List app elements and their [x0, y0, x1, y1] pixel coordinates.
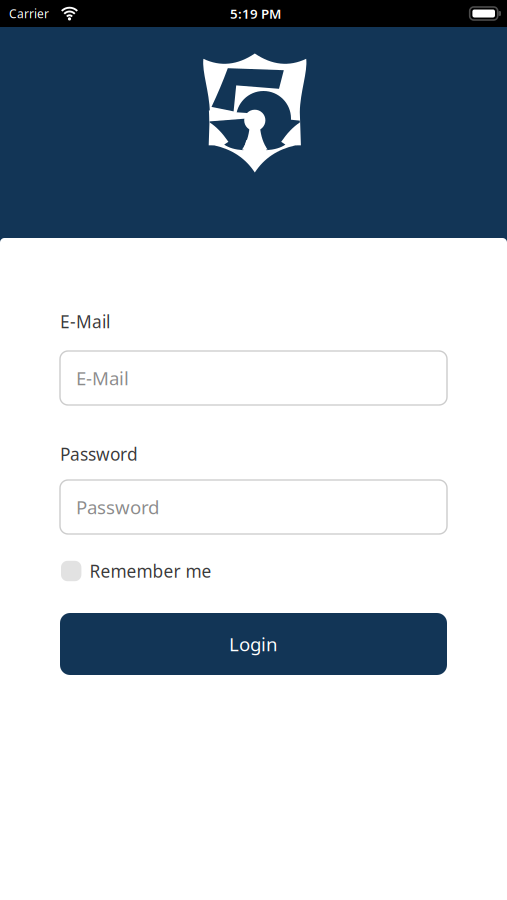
staticText: 5:19 PM	[230, 5, 281, 22]
staticText: Password	[60, 442, 138, 465]
staticText: Remember me	[89, 559, 211, 582]
staticText: Carrier	[9, 5, 49, 21]
staticText: E-Mail	[76, 366, 129, 390]
button[interactable]: Remember me	[61, 559, 211, 582]
staticText: E-Mail	[60, 310, 110, 333]
button[interactable]: E-Mail	[60, 351, 447, 405]
button[interactable]: Password	[60, 480, 447, 534]
staticText: Login	[229, 632, 278, 656]
button[interactable]: Login	[60, 613, 447, 675]
staticText: Password	[76, 495, 159, 519]
